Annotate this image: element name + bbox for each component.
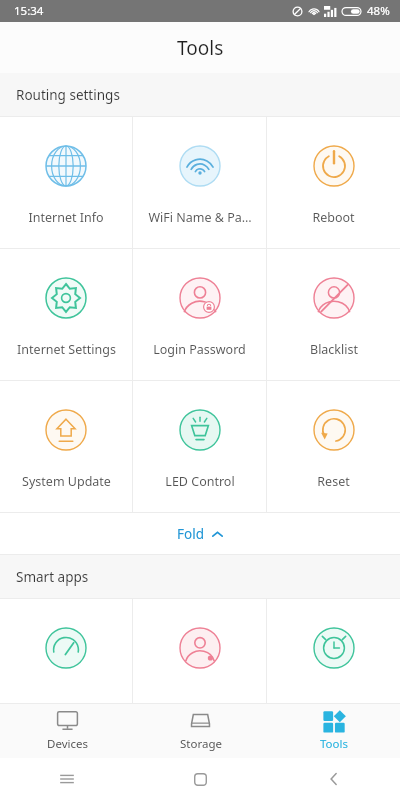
staticText: System Update <box>22 473 111 490</box>
button[interactable]: Storage <box>134 703 267 758</box>
staticText: Smart apps <box>16 568 89 586</box>
staticText: Login Password <box>153 341 246 358</box>
staticText: Reboot <box>312 209 355 226</box>
staticText: LED Control <box>165 473 235 490</box>
staticText: Reset <box>317 473 350 490</box>
staticText: Devices <box>47 736 88 752</box>
button[interactable] <box>133 599 266 703</box>
staticText: Tools <box>177 35 224 61</box>
staticText: Storage <box>180 736 222 752</box>
button[interactable]: Login Password <box>133 249 266 380</box>
button[interactable]: Devices <box>0 703 134 758</box>
staticText: Internet Info <box>28 209 104 226</box>
staticText: Routing settings <box>16 86 120 104</box>
staticText: Blacklist <box>310 341 358 358</box>
button[interactable]: Home <box>134 758 267 800</box>
button[interactable]: Internet Info <box>0 117 132 248</box>
button[interactable]: Reboot <box>267 117 400 248</box>
staticText: WiFi Name & Pa… <box>148 209 252 226</box>
button[interactable]: System Update <box>0 381 132 512</box>
staticText: 15:34 <box>14 3 44 19</box>
button[interactable]: Fold <box>0 513 400 554</box>
button[interactable] <box>267 599 400 703</box>
staticText: Internet Settings <box>17 341 116 358</box>
button[interactable]: Recent apps <box>0 758 134 800</box>
button[interactable]: Tools <box>267 703 400 758</box>
button[interactable]: Internet Settings <box>0 249 132 380</box>
button[interactable]: Reset <box>267 381 400 512</box>
staticText: 48% <box>367 3 390 19</box>
button[interactable]: WiFi Name & Pa… <box>133 117 266 248</box>
button[interactable]: LED Control <box>133 381 266 512</box>
staticText: Fold <box>177 525 204 543</box>
button[interactable]: Blacklist <box>267 249 400 380</box>
staticText: Tools <box>320 736 348 752</box>
button[interactable]: Back <box>267 758 400 800</box>
button[interactable] <box>0 599 132 703</box>
